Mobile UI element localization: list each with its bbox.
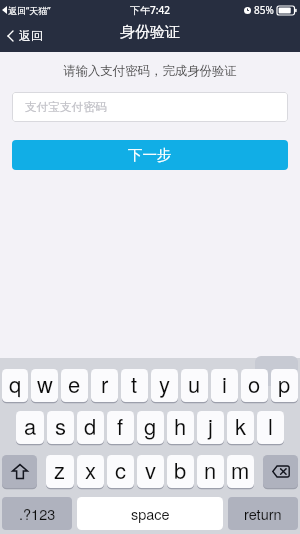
button[interactable]: .?123 xyxy=(2,497,72,530)
staticText: o xyxy=(248,368,261,400)
staticText: z xyxy=(54,454,66,486)
staticText: n xyxy=(204,454,217,486)
button[interactable]: p xyxy=(271,369,298,402)
staticText: 下一步 xyxy=(128,146,172,164)
button[interactable]: q xyxy=(2,369,28,402)
button[interactable]: z xyxy=(46,455,74,488)
staticText: 下午7:42 xyxy=(130,3,170,17)
button[interactable]: r xyxy=(91,369,118,402)
staticText: g xyxy=(144,410,157,442)
staticText: 支付宝支付密码 xyxy=(25,100,107,115)
button[interactable]: space xyxy=(77,497,223,530)
button[interactable]: g xyxy=(137,411,164,444)
button[interactable]: i xyxy=(211,369,238,402)
staticText: j xyxy=(208,410,213,442)
button[interactable]: f xyxy=(107,411,134,444)
staticText: m xyxy=(231,454,250,486)
button[interactable]: h xyxy=(167,411,194,444)
staticText: 身份验证 xyxy=(120,23,180,42)
button[interactable]: l xyxy=(257,411,284,444)
button[interactable]: Shift xyxy=(2,455,37,488)
button[interactable]: x xyxy=(77,455,104,488)
button[interactable]: a xyxy=(16,411,44,444)
button[interactable]: y xyxy=(151,369,178,402)
staticText: .?123 xyxy=(19,503,56,524)
staticText: i xyxy=(222,368,227,400)
button[interactable]: s xyxy=(47,411,74,444)
button[interactable]: Backspace xyxy=(263,455,298,488)
staticText: k xyxy=(235,410,247,442)
button[interactable]: 返回 xyxy=(0,19,50,52)
staticText: t xyxy=(131,368,138,400)
staticText: w xyxy=(37,368,53,400)
staticText: e xyxy=(68,368,81,400)
staticText: a xyxy=(24,410,37,442)
button[interactable]: e xyxy=(61,369,88,402)
staticText: c xyxy=(115,454,127,486)
button[interactable]: d xyxy=(77,411,104,444)
staticText: 返回 xyxy=(19,28,43,43)
button[interactable]: Back to Tmall xyxy=(2,4,51,16)
staticText: y xyxy=(159,368,171,400)
button[interactable]: c xyxy=(107,455,134,488)
staticText: q xyxy=(9,368,22,400)
staticText: 85% xyxy=(254,3,274,17)
button[interactable]: n xyxy=(197,455,224,488)
staticText: 返回“天猫” xyxy=(8,4,51,16)
staticText: p xyxy=(278,368,291,400)
staticText: 请输入支付密码，完成身份验证 xyxy=(0,63,300,79)
button[interactable]: u xyxy=(181,369,208,402)
button[interactable]: v xyxy=(137,455,164,488)
staticText: d xyxy=(84,410,97,442)
button[interactable]: m xyxy=(227,455,254,488)
button[interactable]: w xyxy=(31,369,58,402)
staticText: f xyxy=(117,410,124,442)
staticText: v xyxy=(145,454,157,486)
staticText: b xyxy=(174,454,187,486)
staticText: l xyxy=(268,410,273,442)
staticText: s xyxy=(55,410,67,442)
button[interactable]: 下一步 xyxy=(12,140,288,170)
staticText: space xyxy=(131,503,170,524)
staticText: x xyxy=(85,454,97,486)
button[interactable]: 支付宝支付密码 xyxy=(12,92,288,122)
button[interactable]: o xyxy=(241,369,268,402)
staticText: u xyxy=(188,368,201,400)
button[interactable]: k xyxy=(227,411,254,444)
staticText: h xyxy=(174,410,187,442)
button[interactable]: t xyxy=(121,369,148,402)
staticText: return xyxy=(244,503,282,524)
staticText: r xyxy=(101,368,109,400)
button[interactable]: return xyxy=(228,497,298,530)
button[interactable]: j xyxy=(197,411,224,444)
button[interactable]: b xyxy=(167,455,194,488)
